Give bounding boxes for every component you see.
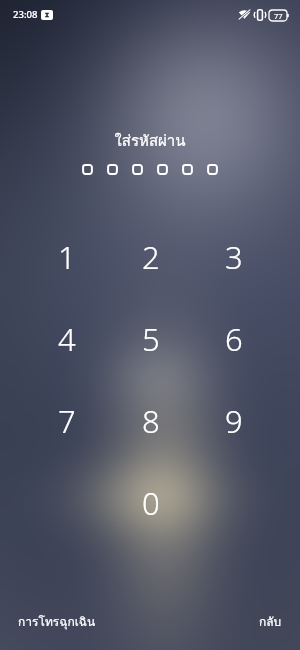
staticText: 4 <box>58 318 76 360</box>
staticText: 0 <box>142 482 160 524</box>
button[interactable]: 3 <box>192 216 275 298</box>
button[interactable]: 5 <box>109 298 192 380</box>
button[interactable]: 2 <box>109 216 192 298</box>
button[interactable]: 9 <box>192 380 275 462</box>
button[interactable]: 8 <box>109 380 192 462</box>
other: No network <box>238 9 251 20</box>
staticText: กลับ <box>259 612 282 631</box>
staticText: 5 <box>142 318 160 360</box>
button[interactable]: 4 <box>25 298 109 380</box>
staticText: 6 <box>225 318 243 360</box>
button[interactable]: 1 <box>25 216 109 298</box>
button[interactable]: 0 <box>109 462 192 544</box>
staticText: 2 <box>142 236 160 278</box>
staticText: 9 <box>225 400 243 442</box>
button[interactable]: 6 <box>192 298 275 380</box>
button[interactable]: การโทรฉุกเฉิน <box>0 606 114 637</box>
staticText: การโทรฉุกเฉิน <box>18 612 96 631</box>
button[interactable]: กลับ <box>241 606 300 637</box>
staticText: 23:08 <box>13 8 38 21</box>
staticText: 77 <box>274 11 283 21</box>
staticText: 8 <box>142 400 160 442</box>
button[interactable]: 7 <box>25 380 109 462</box>
staticText: 1 <box>58 236 76 278</box>
staticText: ใส่รหัสผ่าน <box>0 129 300 153</box>
staticText: 7 <box>58 400 76 442</box>
staticText: 3 <box>225 236 243 278</box>
